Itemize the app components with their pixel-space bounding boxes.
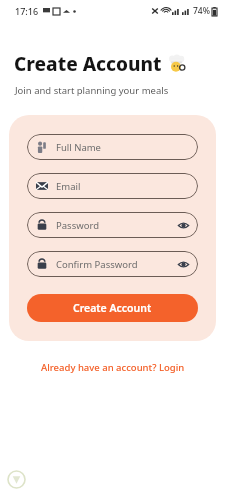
staticText: Already have an account? Login — [41, 361, 185, 374]
button[interactable]: Email — [27, 173, 198, 199]
button[interactable]: Full Name — [27, 134, 198, 160]
button[interactable]: Create Account — [27, 294, 198, 322]
staticText: Confirm Password — [56, 258, 138, 271]
staticText: Full Name — [56, 141, 101, 154]
staticText: Join and start planning your meals — [15, 84, 169, 97]
staticText: Email — [56, 180, 81, 193]
staticText: 17:16 — [15, 5, 39, 17]
button[interactable]: Already have an account? Login — [35, 358, 191, 377]
button[interactable]: Confirm Password — [27, 251, 198, 277]
button[interactable]: Password — [27, 212, 198, 238]
staticText: 74% — [193, 5, 210, 17]
other: Toggle password visibility — [178, 220, 189, 231]
other: Toggle password visibility — [178, 259, 189, 270]
staticText: Create Account — [73, 301, 152, 315]
staticText: Create Account — [14, 51, 162, 77]
staticText: Password — [56, 219, 99, 232]
